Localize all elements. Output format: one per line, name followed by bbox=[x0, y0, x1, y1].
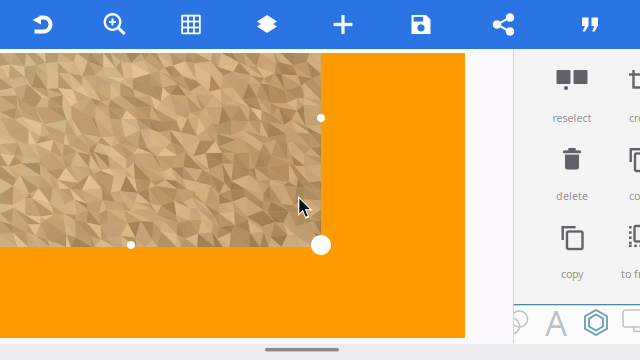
button[interactable]: delete bbox=[538, 127, 606, 205]
staticText: reselect bbox=[552, 111, 591, 125]
staticText: copy bbox=[629, 189, 640, 203]
staticText: to front bbox=[621, 267, 640, 281]
staticText: delete bbox=[556, 189, 588, 203]
button[interactable]: crop bbox=[606, 49, 640, 127]
button[interactable]: to front bbox=[606, 205, 640, 283]
button[interactable]: Grid bbox=[153, 0, 229, 49]
button[interactable]: Quote bbox=[547, 0, 633, 49]
button[interactable]: copy bbox=[606, 127, 640, 205]
button[interactable]: Objects bbox=[576, 305, 616, 339]
button[interactable]: Share bbox=[461, 0, 547, 49]
button[interactable]: reselect bbox=[538, 49, 606, 127]
button[interactable]: Shapes bbox=[496, 305, 536, 339]
button[interactable]: Text bbox=[536, 305, 576, 339]
staticText: crop bbox=[629, 111, 640, 125]
button[interactable]: Layers bbox=[229, 0, 305, 49]
staticText: A bbox=[545, 299, 567, 345]
button[interactable]: Display bbox=[616, 305, 640, 339]
button[interactable]: Add bbox=[305, 0, 381, 49]
staticText: copy bbox=[561, 267, 583, 281]
button[interactable]: copy bbox=[538, 205, 606, 283]
button[interactable]: Undo bbox=[1, 0, 77, 49]
button[interactable]: Zoom in bbox=[77, 0, 153, 49]
button[interactable]: Save bbox=[381, 0, 461, 49]
